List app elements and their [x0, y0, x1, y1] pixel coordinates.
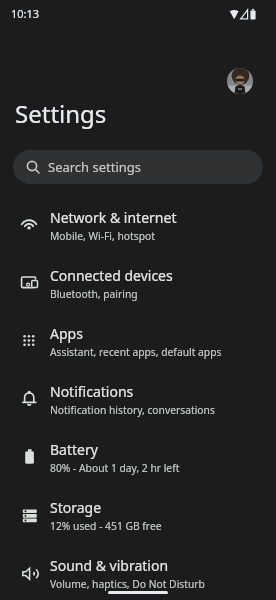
staticText: 10:13 [11, 6, 40, 21]
staticText: Sound & vibration [50, 556, 169, 575]
staticText: Notification history, conversations [50, 403, 215, 417]
button[interactable] [227, 68, 253, 94]
button[interactable]: Search settings [13, 150, 263, 184]
button[interactable]: Connected devices [0, 254, 276, 312]
staticText: Bluetooth, pairing [50, 287, 138, 301]
staticText: Network & internet [50, 208, 177, 227]
staticText: Volume, haptics, Do Not Disturb [50, 577, 205, 591]
staticText: 12% used - 451 GB free [50, 519, 162, 533]
staticText: Storage [50, 498, 102, 517]
staticText: Connected devices [50, 266, 173, 285]
staticText: Assistant, recent apps, default apps [50, 345, 222, 359]
staticText: Mobile, Wi-Fi, hotspot [50, 229, 155, 243]
staticText: Settings [15, 97, 107, 130]
button[interactable]: Notifications [0, 370, 276, 428]
button[interactable]: Sound & vibration [0, 544, 276, 600]
staticText: Battery [50, 440, 98, 459]
button[interactable]: Battery [0, 428, 276, 486]
button[interactable]: Apps [0, 312, 276, 370]
staticText: Search settings [48, 158, 142, 176]
staticText: Notifications [50, 382, 134, 401]
button[interactable]: Storage [0, 486, 276, 544]
button[interactable]: Network & internet [0, 196, 276, 254]
staticText: 80% - About 1 day, 2 hr left [50, 461, 180, 475]
staticText: Apps [50, 324, 83, 343]
